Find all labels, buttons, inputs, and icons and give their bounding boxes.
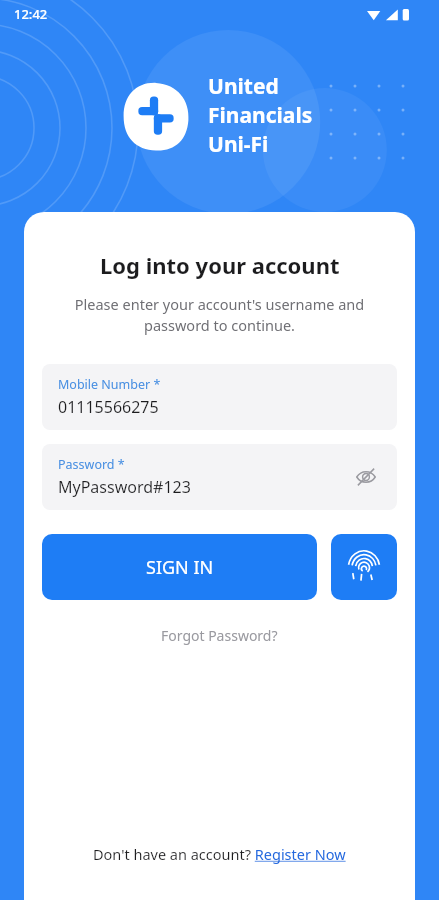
button[interactable]: Toggle password visibility [349, 460, 383, 494]
staticText: Mobile Number * [58, 376, 161, 393]
button[interactable]: Mobile Number * [42, 364, 397, 430]
staticText: Financials [208, 101, 313, 130]
staticText: 12:42 [14, 5, 48, 23]
staticText: Forgot Password? [161, 626, 278, 645]
staticText: MyPassword#123 [58, 476, 191, 498]
staticText: Uni-Fi [208, 130, 269, 159]
staticText: United [208, 72, 279, 101]
button[interactable]: Sign in with fingerprint [331, 534, 397, 600]
staticText: Please enter your account's username and… [42, 294, 397, 336]
staticText: 01115566275 [58, 396, 159, 418]
staticText: SIGN IN [146, 555, 214, 580]
staticText: Log into your account [100, 250, 340, 280]
button[interactable]: Don't have an account? Register Now [85, 840, 354, 868]
button[interactable]: Password * [42, 444, 397, 510]
button[interactable]: SIGN IN [42, 534, 317, 600]
staticText: Don't have an account? Register Now [93, 844, 346, 864]
staticText: Password * [58, 456, 125, 473]
button[interactable]: Forgot Password? [151, 620, 288, 651]
